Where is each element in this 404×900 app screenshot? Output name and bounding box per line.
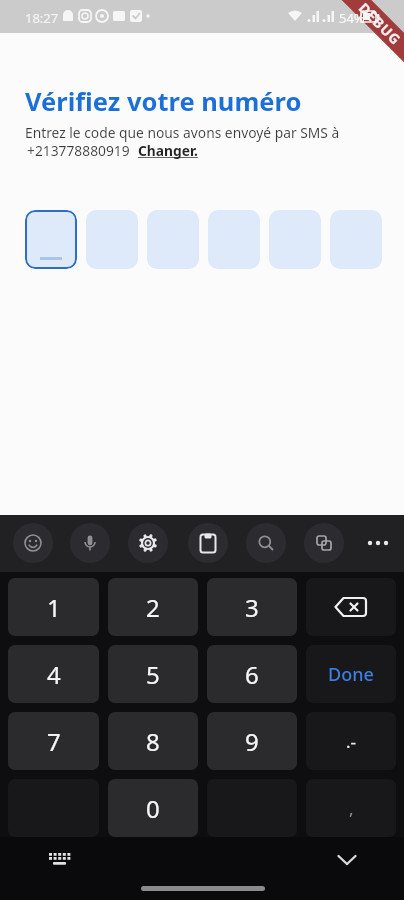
button[interactable] bbox=[330, 210, 382, 269]
button[interactable] bbox=[306, 578, 396, 636]
button[interactable] bbox=[70, 523, 110, 563]
button[interactable] bbox=[329, 842, 365, 878]
button[interactable]: 8 bbox=[108, 712, 198, 770]
button[interactable] bbox=[147, 210, 199, 269]
staticText: 7 bbox=[47, 725, 61, 758]
staticText: .- bbox=[346, 730, 357, 753]
staticText: Entrez le code que nous avons envoyé par… bbox=[25, 123, 340, 142]
button[interactable]: 1 bbox=[8, 578, 99, 636]
button[interactable]: 6 bbox=[207, 645, 297, 703]
button[interactable] bbox=[25, 210, 77, 269]
button[interactable]: 3 bbox=[207, 578, 297, 636]
button[interactable] bbox=[128, 523, 168, 563]
staticText: 4 bbox=[47, 658, 61, 691]
staticText: 8 bbox=[146, 725, 160, 758]
button[interactable]: Done bbox=[306, 645, 396, 703]
button[interactable]: 4 bbox=[8, 645, 99, 703]
button[interactable] bbox=[304, 523, 344, 563]
button[interactable] bbox=[246, 523, 286, 563]
staticText: Vérifiez votre numéro bbox=[25, 84, 302, 119]
staticText: DEBUG bbox=[355, 0, 404, 49]
button[interactable]: Changer. bbox=[138, 141, 198, 160]
button[interactable] bbox=[358, 523, 398, 563]
staticText: 2 bbox=[146, 591, 160, 624]
staticText: 6 bbox=[245, 658, 259, 691]
staticText: Done bbox=[328, 662, 374, 687]
button[interactable]: 5 bbox=[108, 645, 198, 703]
button[interactable] bbox=[269, 210, 321, 269]
staticText: 18:27 bbox=[25, 9, 59, 27]
button[interactable]: .- bbox=[306, 712, 396, 770]
staticText: 54% bbox=[339, 9, 365, 27]
staticText: 3 bbox=[245, 591, 259, 624]
button[interactable] bbox=[208, 210, 260, 269]
button[interactable]: 0 bbox=[108, 779, 198, 837]
staticText: 0 bbox=[146, 792, 160, 825]
button[interactable]: 9 bbox=[207, 712, 297, 770]
button[interactable] bbox=[86, 210, 138, 269]
button[interactable] bbox=[13, 523, 53, 563]
staticText: 5 bbox=[146, 658, 160, 691]
button[interactable] bbox=[42, 842, 78, 878]
staticText: 9 bbox=[245, 725, 259, 758]
staticText: +213778880919 bbox=[27, 141, 130, 160]
button[interactable] bbox=[188, 523, 228, 563]
button[interactable]: 7 bbox=[8, 712, 99, 770]
staticText: 1 bbox=[47, 591, 61, 624]
staticText: , bbox=[349, 797, 354, 820]
button[interactable]: 2 bbox=[108, 578, 198, 636]
button[interactable]: , bbox=[306, 779, 396, 837]
